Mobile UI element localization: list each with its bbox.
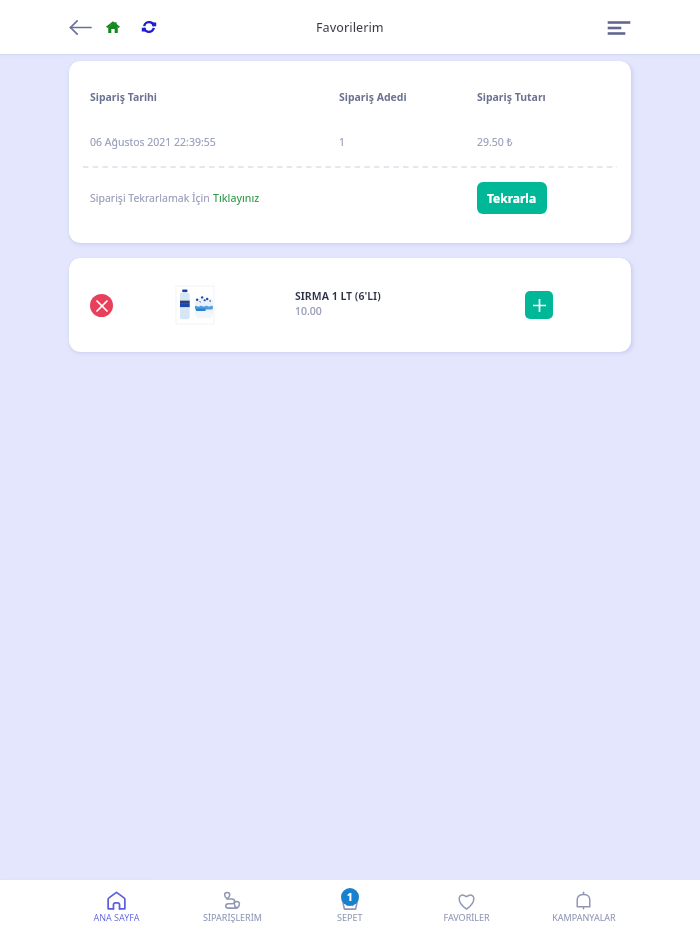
button[interactable]: Home	[97, 11, 129, 43]
button[interactable]: Add to cart	[525, 291, 553, 319]
button[interactable]: 1	[291, 880, 408, 934]
staticText: 10.00	[295, 304, 322, 318]
staticText: ANA SAYFA	[93, 911, 140, 923]
button[interactable]: FAVORİLER	[408, 880, 525, 934]
button[interactable]: Remove favorite	[90, 294, 113, 317]
staticText: Favorilerim	[316, 19, 384, 36]
button[interactable]: SİPARİŞLERİM	[174, 880, 291, 934]
button[interactable]: Siparişi Tekrarlamak İçin	[90, 191, 260, 205]
staticText: 29.50 ₺	[477, 135, 513, 149]
button[interactable]: Menu	[600, 10, 634, 44]
button[interactable]: Refresh	[132, 11, 164, 43]
staticText: Tekrarla	[487, 190, 537, 206]
staticText: SIRMA 1 LT (6'LI)	[295, 289, 381, 303]
button[interactable]: Back	[64, 11, 96, 43]
staticText: SİPARİŞLERİM	[203, 911, 262, 923]
staticText: SEPET	[337, 911, 363, 923]
staticText: Sipariş Tutarı	[477, 90, 546, 104]
staticText: Sipariş Tarihi	[90, 90, 339, 104]
staticText: Siparişi Tekrarlamak İçin	[90, 191, 213, 205]
staticText: 1	[347, 890, 353, 904]
staticText: 1	[339, 135, 477, 149]
button[interactable]: ANA SAYFA	[58, 880, 174, 934]
staticText: FAVORİLER	[443, 911, 490, 923]
staticText: 06 Ağustos 2021 22:39:55	[90, 135, 339, 149]
staticText: Tıklayınız	[213, 191, 260, 205]
staticText: KAMPANYALAR	[552, 911, 616, 923]
staticText: Sipariş Adedi	[339, 90, 477, 104]
button[interactable]: KAMPANYALAR	[525, 880, 642, 934]
button[interactable]: Tekrarla	[477, 182, 547, 214]
